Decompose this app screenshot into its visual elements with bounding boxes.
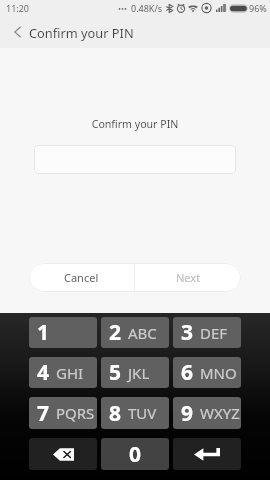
button[interactable]: Next: [135, 263, 241, 292]
button[interactable]: 5: [101, 357, 169, 388]
staticText: TUV: [128, 403, 157, 423]
staticText: 6: [181, 358, 194, 387]
staticText: Confirm your PIN: [0, 117, 270, 131]
button[interactable]: 6: [173, 357, 241, 388]
staticText: WXYZ: [200, 403, 240, 423]
staticText: DEF: [200, 323, 228, 343]
staticText: PQRS: [56, 403, 95, 423]
staticText: 7: [37, 399, 50, 428]
staticText: 5: [109, 358, 122, 387]
staticText: 96%: [249, 2, 267, 14]
staticText: Cancel: [64, 270, 99, 285]
button[interactable]: 0: [101, 438, 169, 470]
button[interactable]: Cancel: [29, 263, 134, 292]
button[interactable]: 9: [173, 397, 241, 429]
staticText: 9: [181, 399, 194, 428]
staticText: 3: [181, 318, 194, 347]
staticText: 0: [129, 440, 142, 469]
staticText: 0.48K/s: [131, 2, 163, 14]
button[interactable]: [34, 145, 236, 174]
staticText: 8: [109, 399, 122, 428]
staticText: 11:20: [6, 2, 30, 14]
button[interactable]: 7: [29, 397, 97, 429]
staticText: Confirm your PIN: [29, 24, 134, 41]
staticText: JKL: [128, 363, 150, 383]
button[interactable]: Enter: [173, 438, 241, 470]
staticText: 2: [109, 318, 122, 347]
button[interactable]: 2: [101, 317, 169, 348]
staticText: 4: [37, 358, 50, 387]
staticText: GHI: [56, 363, 84, 383]
staticText: ABC: [128, 323, 157, 343]
button[interactable]: 8: [101, 397, 169, 429]
button[interactable]: 4: [29, 357, 97, 388]
button[interactable]: Backspace: [29, 438, 97, 470]
button[interactable]: 3: [173, 317, 241, 348]
button[interactable]: 1: [29, 317, 97, 348]
staticText: 1: [37, 318, 50, 347]
staticText: MNO: [200, 363, 237, 383]
staticText: Next: [176, 270, 201, 285]
button[interactable]: Back: [3, 18, 31, 46]
